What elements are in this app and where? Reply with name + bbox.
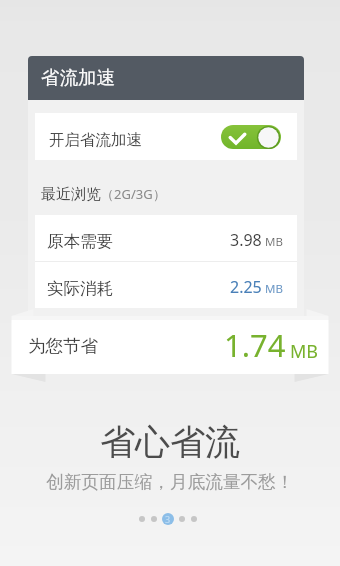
button[interactable]: 省流加速 <box>28 56 304 100</box>
staticText: 省流加速 <box>41 66 115 89</box>
staticText: 开启省流加速 <box>49 130 142 150</box>
button[interactable]: 实际消耗 <box>35 262 297 308</box>
button[interactable]: Toggle data saver <box>221 125 281 149</box>
staticText: 创新页面压缩，月底流量不愁！ <box>46 471 294 493</box>
button[interactable]: 原本需要 <box>35 215 297 261</box>
staticText: （2G/3G） <box>101 185 166 203</box>
button[interactable] <box>148 513 160 525</box>
staticText: 原本需要 <box>47 231 113 252</box>
button[interactable] <box>188 513 200 525</box>
button[interactable]: Page 3 <box>162 513 174 525</box>
staticText: MB <box>290 339 319 364</box>
button[interactable]: 为您节省 <box>12 316 329 374</box>
staticText: 省心省流 <box>100 420 240 464</box>
staticText: 3.98 <box>230 229 262 251</box>
staticText: 最近浏览 <box>41 185 101 204</box>
button[interactable] <box>136 513 148 525</box>
staticText: 为您节省 <box>28 335 98 357</box>
button[interactable]: 开启省流加速 <box>35 113 297 160</box>
staticText: 实际消耗 <box>47 278 113 299</box>
staticText: 1.74 <box>224 324 286 366</box>
staticText: MB <box>265 281 283 297</box>
staticText: 2.25 <box>230 276 262 298</box>
staticText: 3 <box>165 513 171 525</box>
staticText: MB <box>265 234 283 250</box>
button[interactable] <box>176 513 188 525</box>
